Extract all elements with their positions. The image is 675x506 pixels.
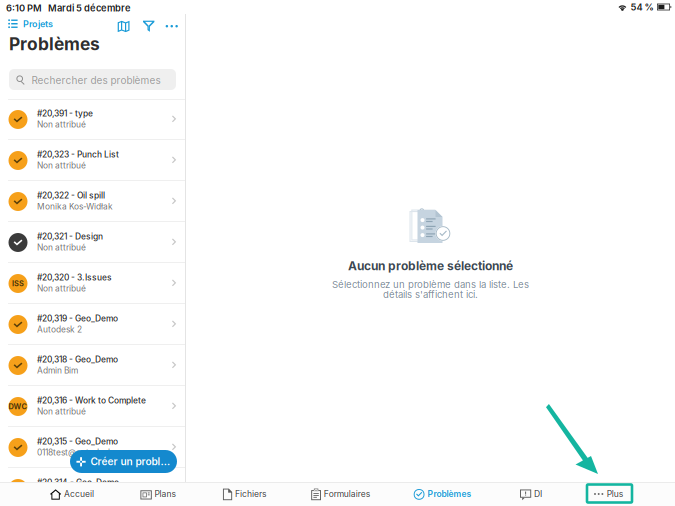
staticText: #20,315 - Geo_Demo — [37, 436, 118, 447]
staticText: ISS — [12, 279, 24, 288]
staticText: Non attribué — [37, 160, 86, 171]
staticText: Admin Bim — [37, 365, 78, 376]
staticText: Non attribué — [37, 242, 86, 253]
staticText: Rechercher des problèmes — [31, 74, 160, 86]
staticText: Problèmes — [9, 33, 100, 54]
staticText: Mardi 5 décembre — [42, 2, 131, 14]
staticText: DI — [534, 489, 542, 499]
button[interactable]: Problèmes — [409, 484, 475, 504]
staticText: Aucun problème sélectionné — [348, 259, 513, 273]
staticText: Créer un problème — [90, 455, 170, 468]
staticText: Non attribué — [37, 406, 86, 417]
button[interactable]: DWC — [0, 386, 185, 427]
button[interactable]: Créer un problème — [70, 450, 177, 473]
staticText: Non attribué — [37, 488, 86, 499]
button[interactable]: ISS — [0, 263, 185, 304]
button[interactable]: Plus d'options — [161, 15, 182, 37]
staticText: Projets — [23, 18, 53, 29]
staticText: #20,391 - type — [37, 108, 93, 119]
staticText: #20,318 - Geo_Demo — [37, 354, 118, 365]
button[interactable]: #20,315 - Geo_Demo — [0, 427, 185, 468]
staticText: Plans — [155, 489, 177, 499]
staticText: #20,322 - Oil spill — [37, 190, 105, 201]
staticText: 54 % — [630, 1, 653, 13]
staticText: Formulaires — [324, 489, 371, 499]
button[interactable]: Filtrer — [138, 15, 160, 38]
staticText: Sélectionnez un problème dans la liste. … — [332, 279, 529, 290]
button[interactable]: Projets — [1, 14, 60, 34]
staticText: 6:10 PM — [6, 2, 42, 14]
staticText: Plus — [607, 489, 624, 499]
staticText: Accueil — [64, 489, 94, 499]
staticText: #20,316 - Work to Complete — [37, 395, 146, 406]
button[interactable]: #20,323 - Punch List — [0, 140, 185, 181]
button[interactable]: Fichiers — [219, 484, 271, 504]
staticText: Monika Kos-Widłak — [37, 201, 113, 212]
button[interactable]: #20,319 - Geo_Demo — [0, 304, 185, 345]
staticText: DWC — [8, 402, 27, 411]
button[interactable]: #20,318 - Geo_Demo — [0, 345, 185, 386]
staticText: #20,321 - Design — [37, 231, 103, 242]
button[interactable]: Formulaires — [307, 484, 375, 504]
button[interactable]: #20,391 - type — [0, 99, 185, 140]
button[interactable]: Rechercher des problèmes — [9, 69, 176, 90]
button[interactable]: Accueil — [46, 484, 98, 504]
button[interactable]: Carte — [112, 15, 135, 38]
staticText: détails s'affichent ici. — [383, 289, 478, 300]
staticText: #20,323 - Punch List — [37, 149, 119, 160]
staticText: #20,320 - 3.Issues — [37, 272, 112, 283]
button[interactable]: #20,321 - Design — [0, 222, 185, 263]
button[interactable]: #20,314 - Geo_Demo — [0, 468, 185, 506]
staticText: #20,319 - Geo_Demo — [37, 313, 118, 324]
staticText: Autodesk 2 — [37, 324, 82, 335]
button[interactable]: Plans — [136, 484, 181, 504]
staticText: 0118test@autodesk.com — [37, 447, 132, 458]
staticText: Fichiers — [235, 489, 267, 499]
staticText: Non attribué — [37, 119, 86, 130]
button[interactable]: DI — [516, 484, 546, 504]
staticText: #20,314 - Geo_Demo — [37, 477, 119, 488]
staticText: Non attribué — [37, 283, 86, 294]
button[interactable]: #20,322 - Oil spill — [0, 181, 185, 222]
button[interactable]: Plus — [590, 484, 628, 504]
staticText: Problèmes — [427, 489, 471, 499]
